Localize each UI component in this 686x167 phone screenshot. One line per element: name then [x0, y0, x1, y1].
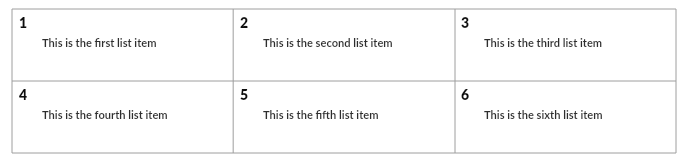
- button[interactable]: 2: [233, 9, 454, 81]
- staticText: 4: [19, 86, 28, 103]
- staticText: This is the first list item: [42, 36, 157, 49]
- button[interactable]: 4: [12, 81, 233, 153]
- staticText: This is the fifth list item: [263, 108, 379, 121]
- staticText: This is the third list item: [484, 36, 603, 49]
- staticText: This is the fourth list item: [42, 108, 168, 121]
- staticText: 5: [240, 86, 249, 103]
- staticText: This is the sixth list item: [484, 108, 603, 121]
- button[interactable]: 3: [454, 9, 675, 81]
- staticText: 1: [19, 14, 28, 31]
- button[interactable]: 6: [454, 81, 675, 153]
- button[interactable]: 1: [12, 9, 233, 81]
- button[interactable]: 5: [233, 81, 454, 153]
- staticText: 6: [461, 86, 470, 103]
- staticText: This is the second list item: [263, 36, 393, 49]
- staticText: 2: [240, 14, 249, 31]
- staticText: 3: [461, 14, 470, 31]
